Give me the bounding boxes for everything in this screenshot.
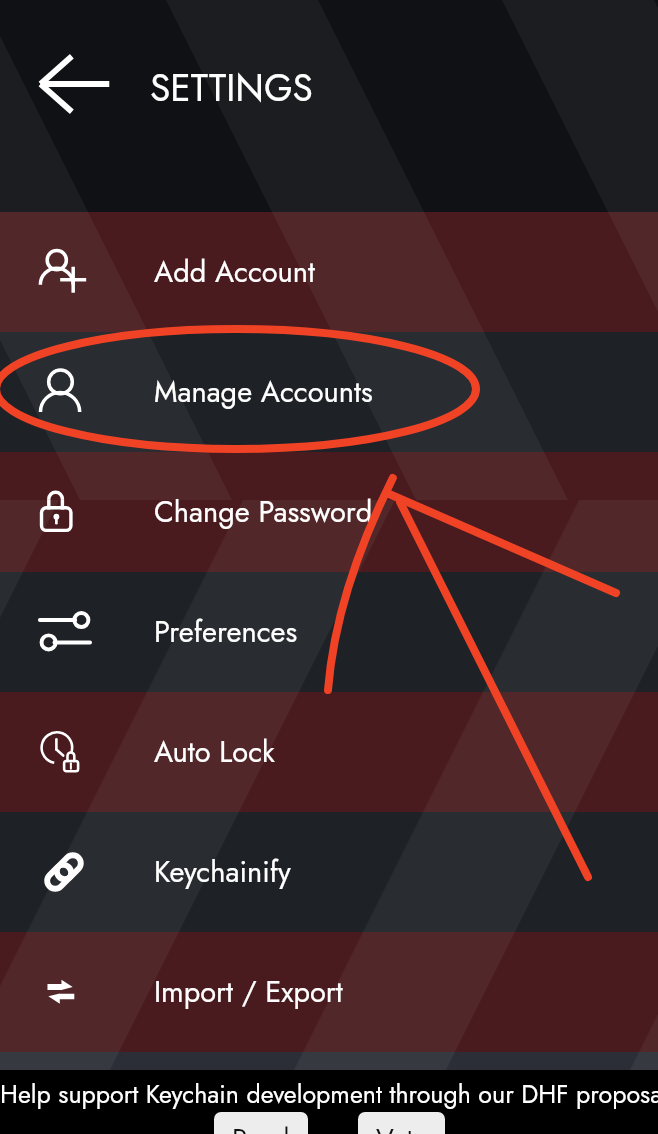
- staticText: SETTINGS: [150, 61, 313, 114]
- button[interactable]: Add Account: [0, 212, 658, 332]
- staticText: Read: [232, 1119, 290, 1134]
- button[interactable]: Preferences: [0, 572, 658, 692]
- staticText: Change Password: [154, 491, 373, 533]
- button[interactable]: Read: [214, 1112, 308, 1134]
- staticText: Help support Keychain development throug…: [0, 1076, 658, 1112]
- button[interactable]: Manage Accounts: [0, 332, 658, 452]
- staticText: Manage Accounts: [154, 371, 373, 413]
- button[interactable]: Change Password: [0, 452, 658, 572]
- button[interactable]: Keychainify: [0, 812, 658, 932]
- staticText: Add Account: [154, 251, 316, 293]
- button[interactable]: Back: [38, 48, 110, 120]
- staticText: Auto Lock: [154, 731, 275, 773]
- staticText: Preferences: [154, 611, 298, 653]
- staticText: Import / Export: [154, 971, 343, 1013]
- button[interactable]: Import / Export: [0, 932, 658, 1052]
- button[interactable]: Vote: [358, 1112, 445, 1134]
- staticText: Keychainify: [154, 851, 291, 893]
- button[interactable]: Auto Lock: [0, 692, 658, 812]
- staticText: Vote: [376, 1119, 427, 1134]
